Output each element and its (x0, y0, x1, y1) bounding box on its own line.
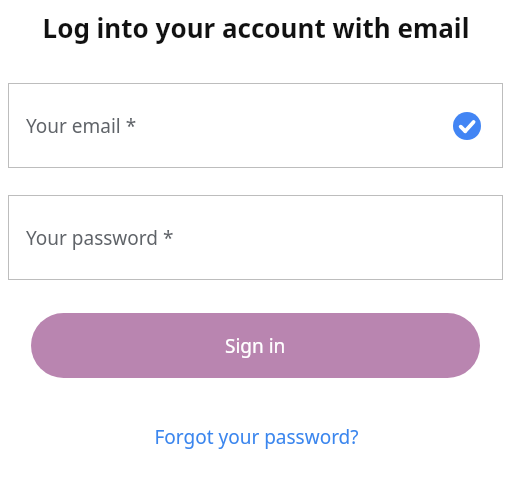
staticText: Log into your account with email (0, 10, 512, 45)
button[interactable]: Your password * (8, 195, 503, 280)
other: Email verified (453, 112, 481, 140)
staticText: Sign in (225, 333, 286, 359)
button[interactable]: Your email * (8, 83, 503, 168)
staticText: Your password * (26, 225, 174, 251)
staticText: Your email * (26, 113, 137, 139)
button[interactable]: Forgot your password? (142, 420, 371, 454)
staticText: Forgot your password? (154, 424, 359, 450)
button[interactable]: Sign in (31, 313, 480, 378)
